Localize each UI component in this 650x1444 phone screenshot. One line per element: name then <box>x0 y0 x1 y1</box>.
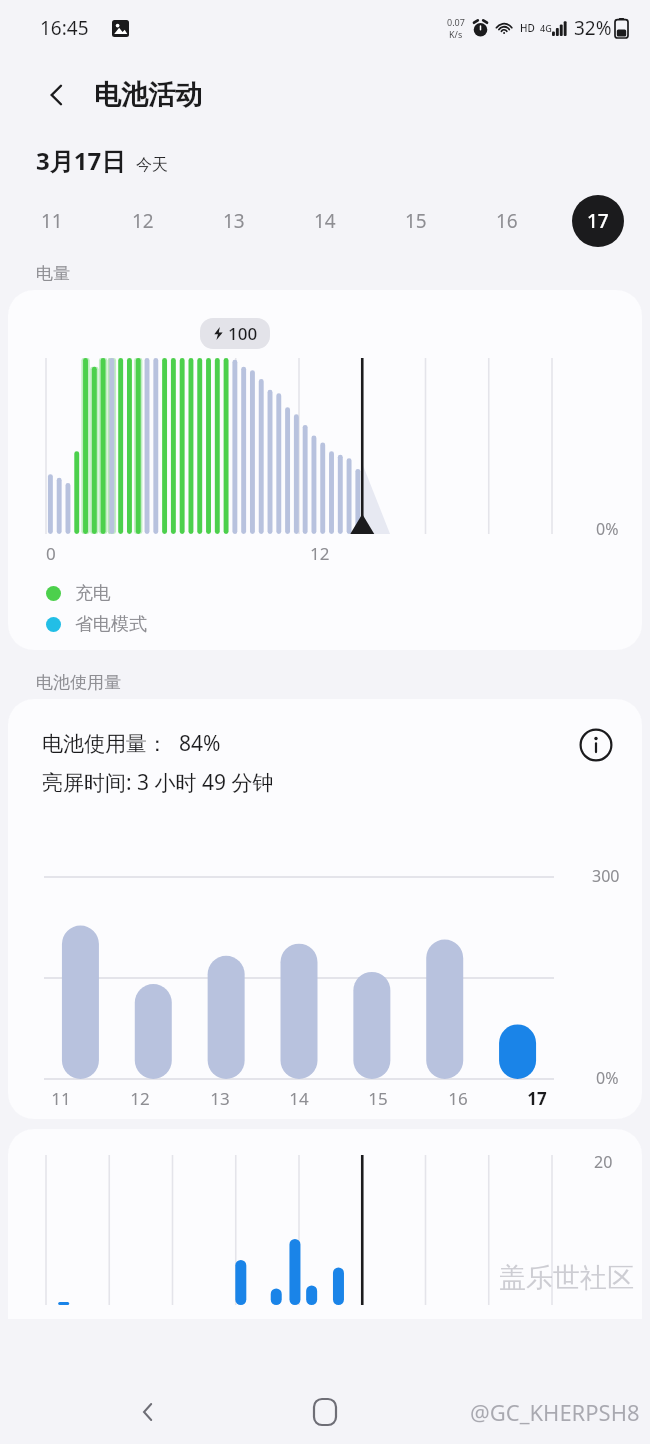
staticText: 充电 <box>75 582 111 605</box>
button[interactable]: 电池使用量： 84% <box>8 699 642 1119</box>
staticText: 电量 <box>36 263 70 284</box>
staticText: 电池活动 <box>94 78 202 112</box>
staticText: 电池使用量 <box>36 672 121 693</box>
staticText: 省电模式 <box>75 613 147 636</box>
staticText: 300 <box>592 865 620 887</box>
button[interactable]: 11 <box>26 195 78 247</box>
staticText: 32% <box>574 15 612 41</box>
staticText: 12 <box>310 542 330 565</box>
staticText: 13 <box>203 1087 237 1110</box>
staticText: 15 <box>361 1087 395 1110</box>
staticText: 15 <box>405 208 427 234</box>
staticText: @GC_KHERPSH8 <box>470 1397 640 1427</box>
staticText: 14 <box>282 1087 316 1110</box>
button[interactable]: 13 <box>208 195 260 247</box>
staticText: 17 <box>587 208 609 234</box>
button[interactable]: 16 <box>481 195 533 247</box>
staticText: 12 <box>123 1087 157 1110</box>
button[interactable]: Back <box>34 72 80 118</box>
staticText: 11 <box>41 208 63 234</box>
staticText: 0 <box>46 542 56 565</box>
button[interactable]: 12 <box>117 195 169 247</box>
button[interactable]: 20 <box>8 1129 642 1319</box>
staticText: 11 <box>44 1087 78 1110</box>
staticText: 16:45 <box>40 15 89 41</box>
staticText: 亮屏时间: 3 小时 49 分钟 <box>42 768 274 797</box>
button[interactable]: 17 <box>572 195 624 247</box>
button[interactable]: 100 <box>8 290 642 650</box>
staticText: 今天 <box>136 155 168 175</box>
staticText: 16 <box>441 1087 475 1110</box>
staticText: 17 <box>520 1087 554 1110</box>
staticText: 3月17日 <box>36 144 126 177</box>
staticText: 14 <box>314 208 336 234</box>
staticText: 13 <box>223 208 245 234</box>
staticText: 4G <box>540 22 552 34</box>
staticText: K/s <box>449 28 463 40</box>
button[interactable]: Info <box>576 725 616 765</box>
button[interactable]: 15 <box>390 195 442 247</box>
button[interactable]: 14 <box>299 195 351 247</box>
staticText: 0% <box>596 1067 619 1089</box>
staticText: 0.07 <box>447 16 465 28</box>
staticText: 16 <box>496 208 518 234</box>
staticText: 0% <box>596 518 619 540</box>
staticText: 100 <box>228 322 258 345</box>
staticText: HD <box>520 21 535 35</box>
button[interactable]: Back <box>126 1390 170 1434</box>
staticText: 12 <box>132 208 154 234</box>
button[interactable]: Home <box>303 1390 347 1434</box>
staticText: 电池使用量： 84% <box>42 729 221 758</box>
staticText: 20 <box>594 1151 613 1173</box>
staticText: 盖乐世社区 <box>499 1261 634 1295</box>
